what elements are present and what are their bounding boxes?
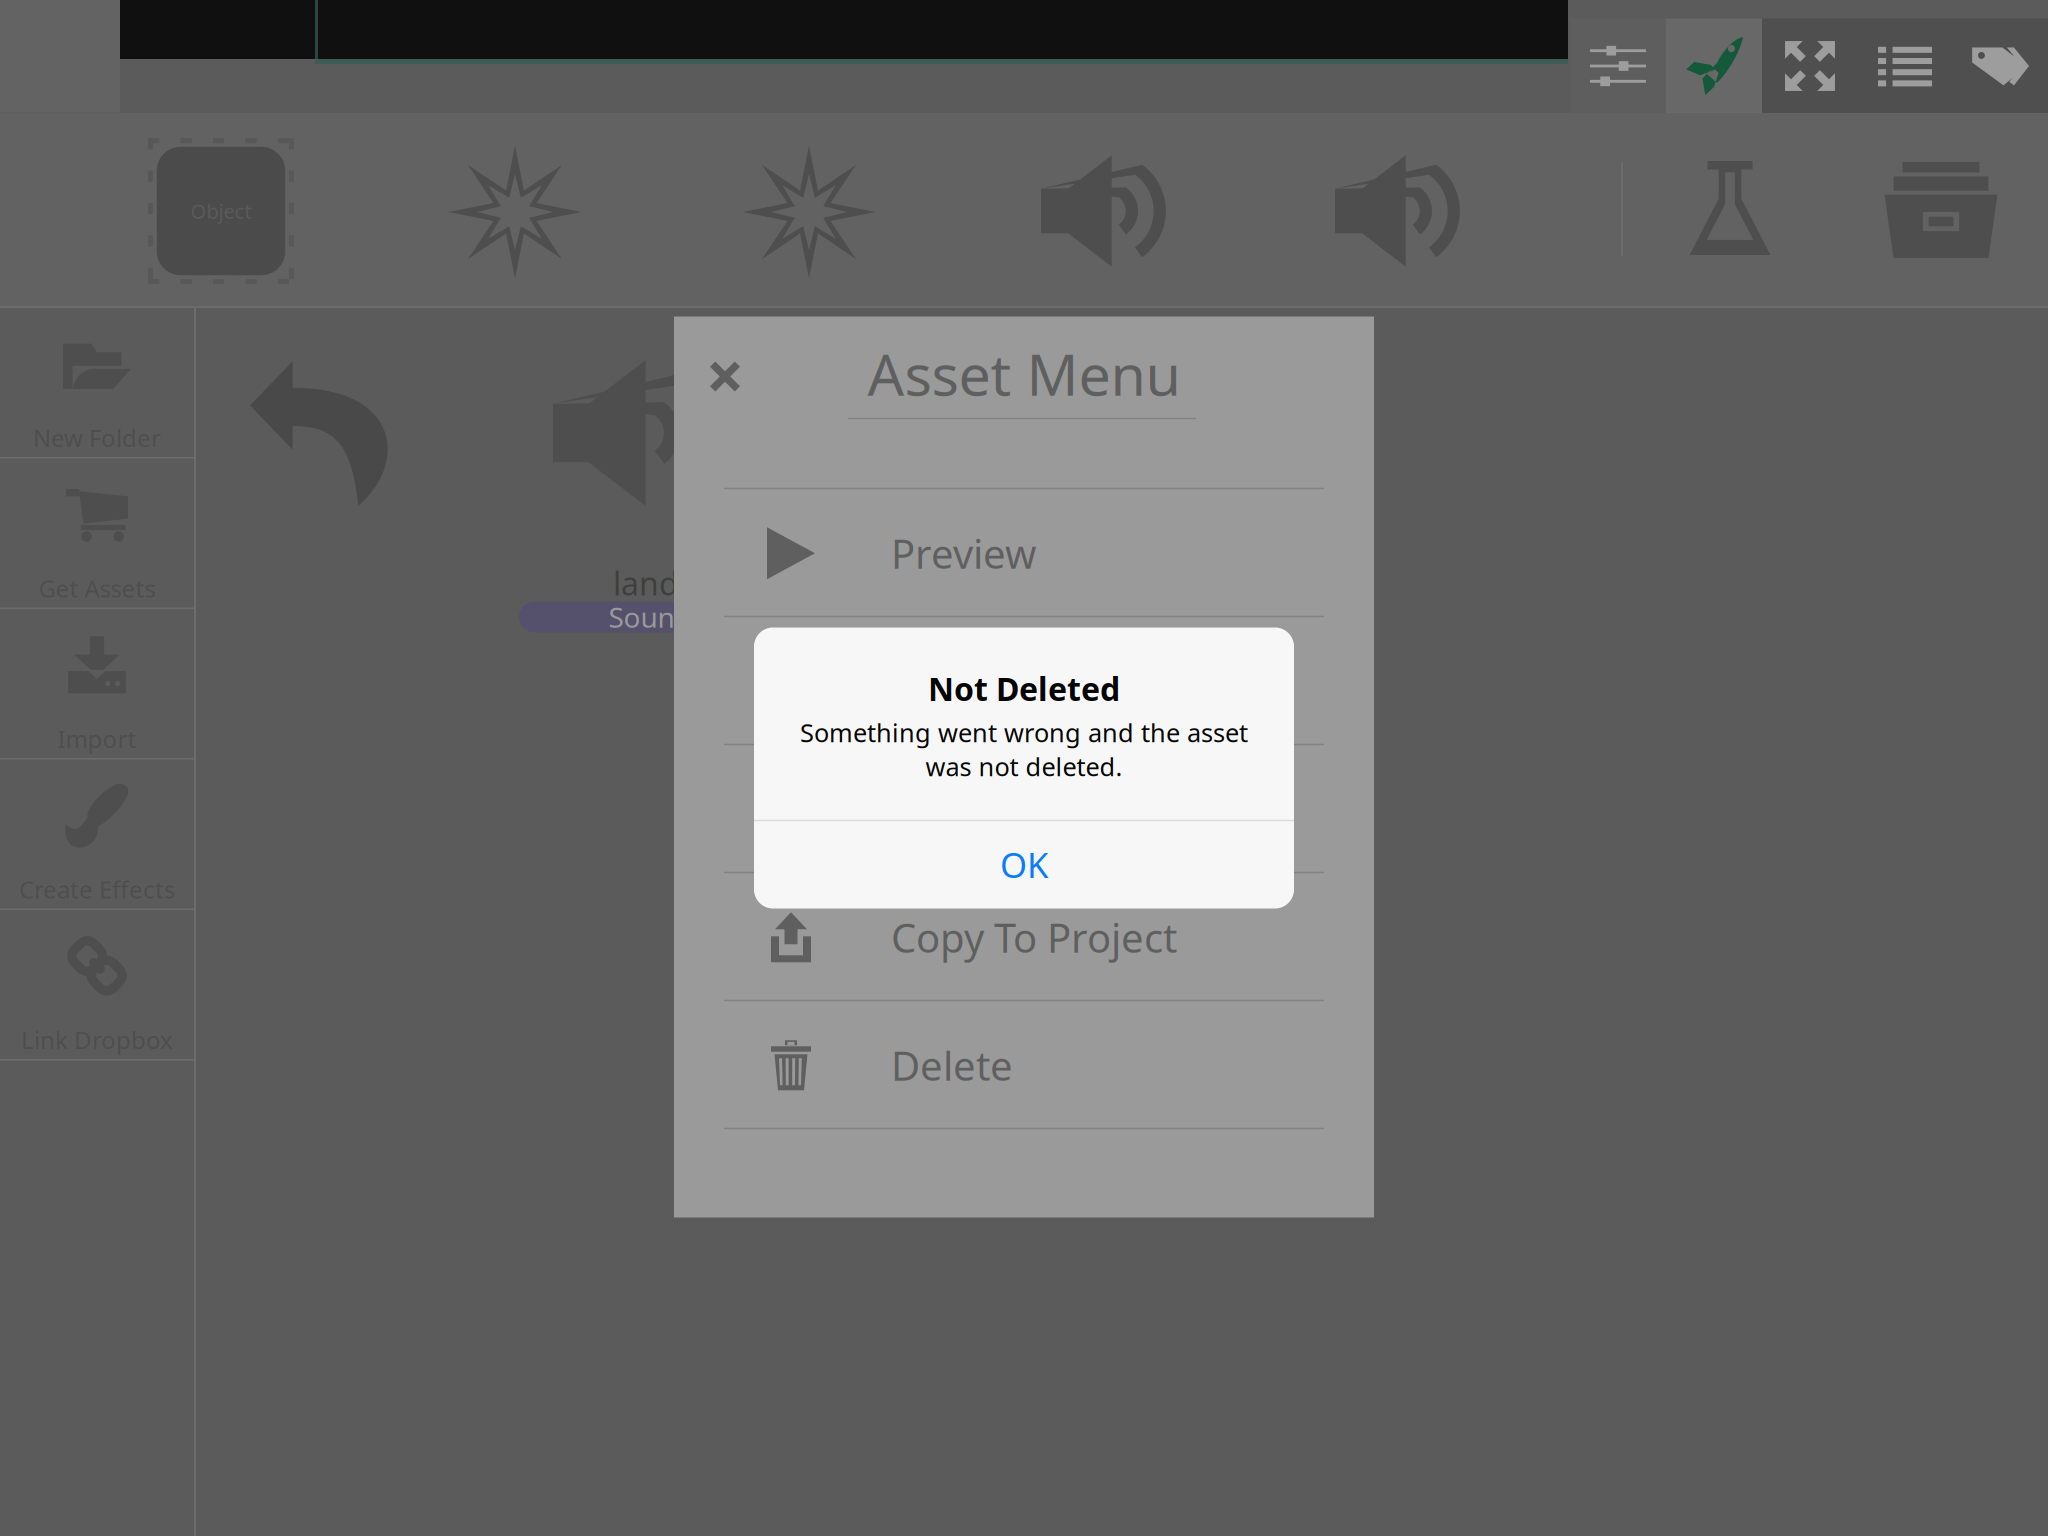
button[interactable]: Effect <box>693 117 925 307</box>
staticText: New Folder <box>33 422 161 454</box>
button[interactable]: Rename <box>674 617 1374 745</box>
button[interactable]: Object <box>105 116 337 306</box>
button[interactable]: Tags <box>1952 18 2047 113</box>
button[interactable]: Undo <box>227 337 437 527</box>
button[interactable]: Full Screen <box>1762 18 1857 113</box>
button[interactable]: Favourite <box>674 745 1374 873</box>
button[interactable]: Copy To Project <box>674 873 1374 1001</box>
staticText: Favourite <box>891 783 1067 836</box>
button[interactable]: land Sound asset <box>492 349 792 619</box>
button[interactable]: Sound <box>993 116 1225 306</box>
staticText: OK <box>1000 841 1048 887</box>
staticText: Preview <box>891 527 1036 580</box>
button[interactable]: Close <box>693 344 757 408</box>
staticText: land <box>613 562 679 604</box>
button[interactable]: Create Effects <box>0 759 194 910</box>
button[interactable]: Preview <box>674 489 1374 617</box>
staticText: Link Dropbox <box>21 1024 173 1056</box>
button[interactable]: New Folder <box>0 308 194 458</box>
button[interactable]: Experiments <box>1645 113 1815 303</box>
staticText: Create Effects <box>19 873 175 905</box>
staticText: Asset Menu <box>867 335 1180 411</box>
button[interactable]: List <box>1857 18 1952 113</box>
button[interactable]: Archive <box>1856 115 2026 305</box>
button[interactable]: Link Dropbox <box>0 910 194 1060</box>
button[interactable]: Import <box>0 609 194 759</box>
button[interactable]: Effect <box>399 117 631 307</box>
staticText: Not Deleted <box>928 667 1120 710</box>
staticText: Something went wrong and the asset <box>800 716 1248 749</box>
button[interactable]: Delete <box>674 1001 1374 1129</box>
staticText: Copy To Project <box>891 911 1177 964</box>
button[interactable]: Publish <box>1666 18 1762 113</box>
staticText: Import <box>57 723 136 755</box>
button[interactable]: Music <box>1287 116 1519 306</box>
staticText: Object <box>190 198 251 224</box>
staticText: Delete <box>891 1039 1013 1092</box>
staticText: Sound <box>608 598 691 636</box>
button[interactable]: OK <box>754 821 1294 908</box>
button[interactable]: Adjustments <box>1570 18 1666 113</box>
staticText: was not deleted. <box>925 750 1122 783</box>
staticText: Get Assets <box>38 572 155 604</box>
staticText: Rename <box>891 655 1046 708</box>
button[interactable]: Get Assets <box>0 458 194 609</box>
